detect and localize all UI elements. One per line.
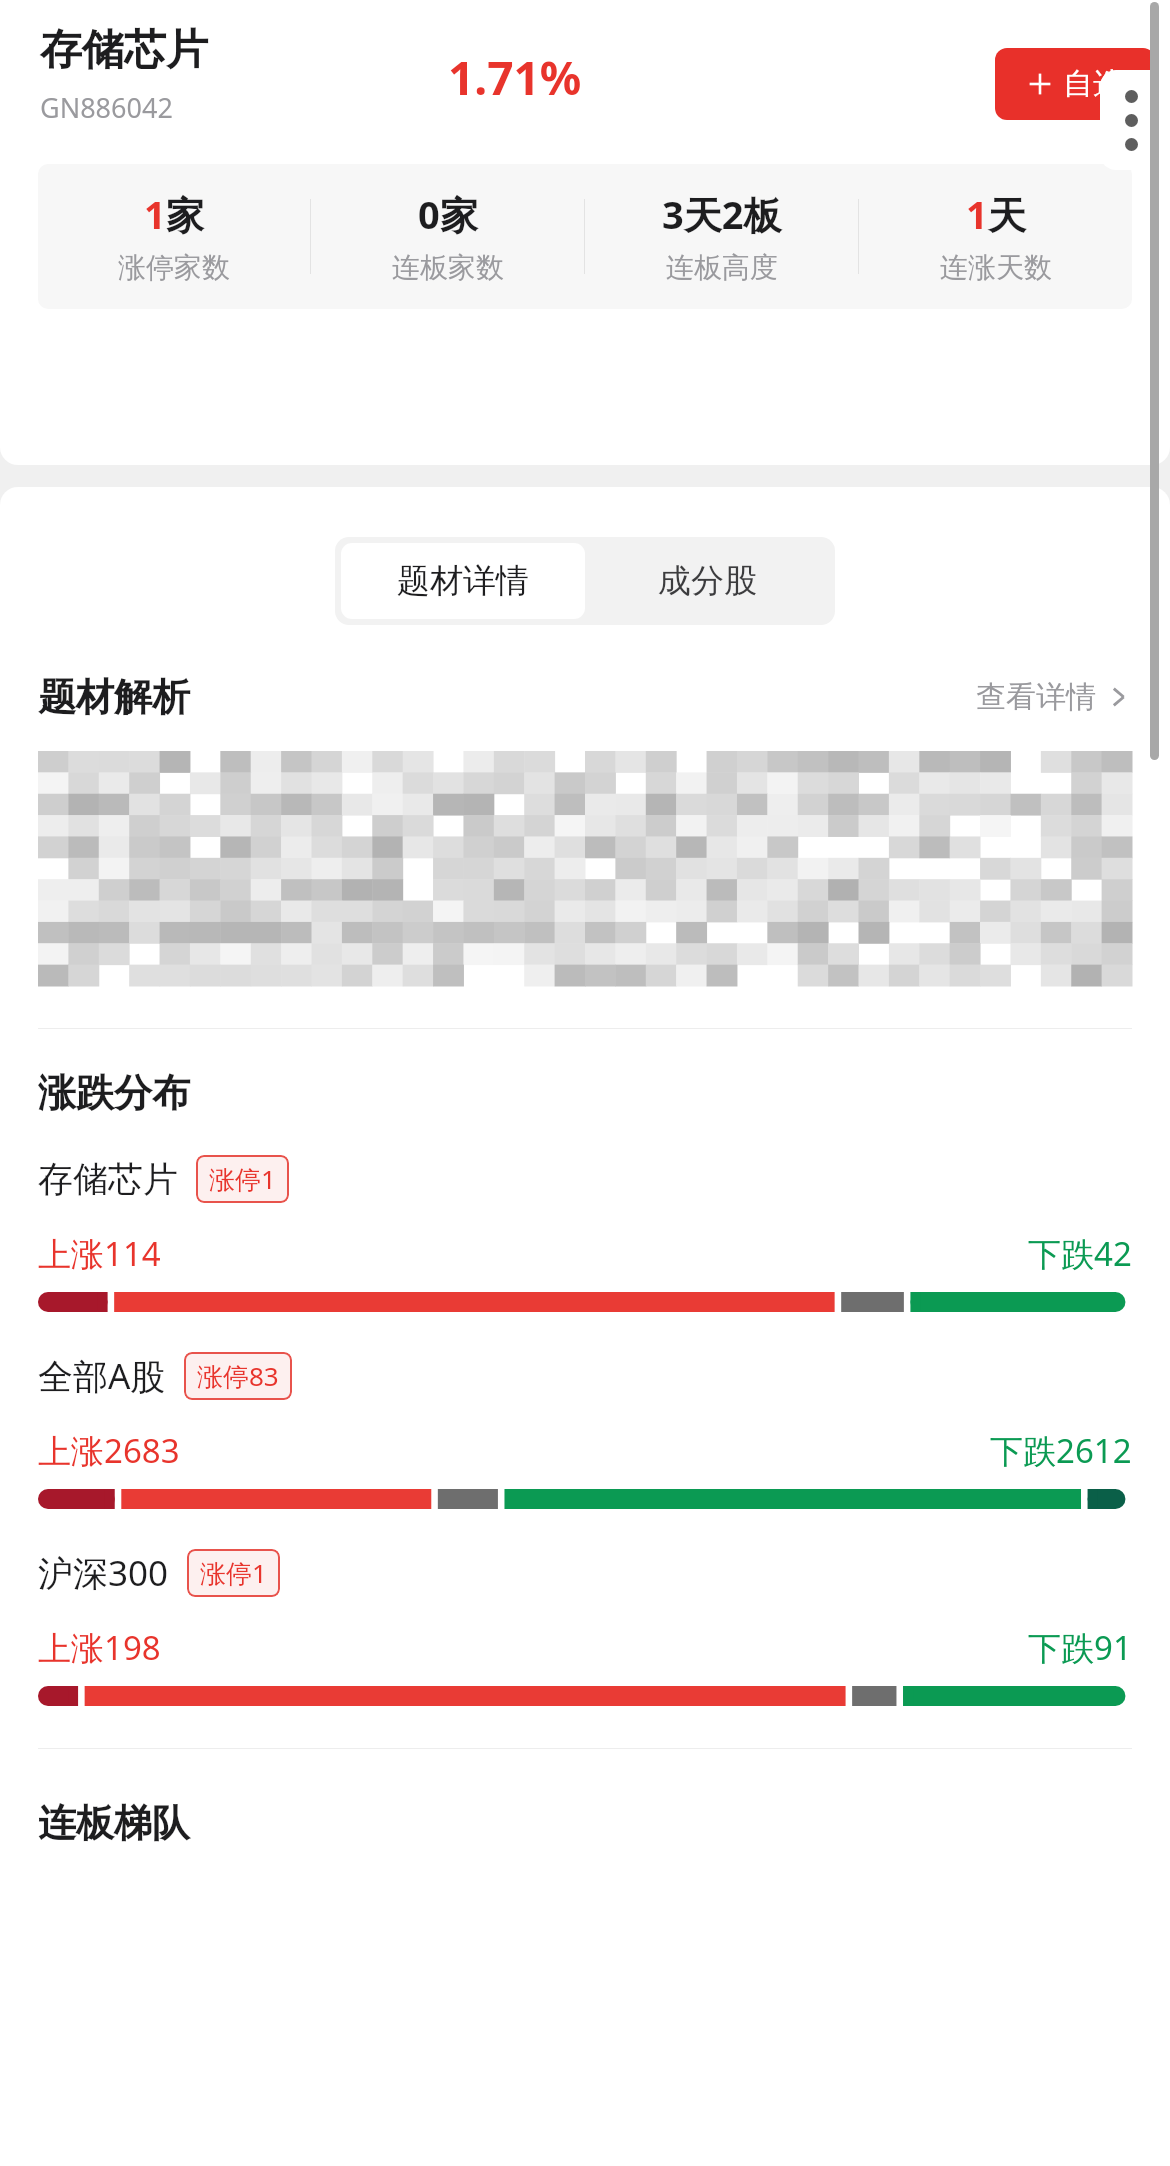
button[interactable]: 题材详情 <box>341 543 585 619</box>
staticText: 家 <box>440 192 478 240</box>
staticText: 上涨2683 <box>38 1428 180 1473</box>
staticText: 题材详情 <box>397 560 529 602</box>
button[interactable]: 自选 <box>995 48 1155 120</box>
staticText: 连板高度 <box>666 250 778 285</box>
staticText: 涨停家数 <box>118 250 230 285</box>
staticText: 题材解析 <box>38 673 190 721</box>
staticText: 下跌2612 <box>990 1428 1132 1473</box>
staticText: 成分股 <box>658 560 757 602</box>
staticText: 自选 <box>1063 65 1123 103</box>
staticText: 上涨198 <box>38 1625 161 1670</box>
staticText: 家 <box>166 192 204 240</box>
button[interactable]: 全部A股 <box>0 1352 1170 1509</box>
button[interactable]: 成分股 <box>585 543 829 619</box>
button[interactable]: 题材解析 <box>38 673 1132 721</box>
staticText: 1 <box>966 188 988 240</box>
staticText: 1 <box>144 188 166 240</box>
staticText: 存储芯片 <box>38 1157 178 1201</box>
button[interactable]: 沪深300 <box>0 1549 1170 1706</box>
staticText: 连涨天数 <box>940 250 1052 285</box>
staticText: 涨停1 <box>200 1555 267 1591</box>
staticText: 天 <box>988 192 1026 240</box>
staticText: 连板梯队 <box>38 1799 190 1847</box>
button[interactable]: 3天2板 <box>585 188 858 285</box>
staticText: 上涨114 <box>38 1231 161 1276</box>
staticText: GN886042 <box>40 89 173 126</box>
staticText: 下跌91 <box>1028 1625 1132 1670</box>
button[interactable]: 存储芯片 <box>0 1155 1170 1312</box>
staticText: 下跌42 <box>1028 1231 1132 1276</box>
staticText: 1.71% <box>448 46 582 109</box>
button[interactable]: 1 <box>38 188 310 285</box>
staticText: 沪深300 <box>38 1549 169 1597</box>
staticText: 3天2板 <box>662 188 782 240</box>
staticText: 连板家数 <box>392 250 504 285</box>
staticText: 涨跌分布 <box>38 1069 190 1117</box>
staticText: 全部A股 <box>38 1352 166 1400</box>
staticText: 0 <box>418 188 440 240</box>
button[interactable]: 1 <box>859 188 1132 285</box>
button[interactable]: 0 <box>311 188 584 285</box>
staticText: 涨停83 <box>197 1358 279 1394</box>
staticText: 存储芯片 <box>40 24 208 77</box>
button[interactable]: More options <box>1100 70 1170 170</box>
staticText: 涨停1 <box>209 1161 276 1197</box>
staticText: 查看详情 <box>976 678 1096 716</box>
